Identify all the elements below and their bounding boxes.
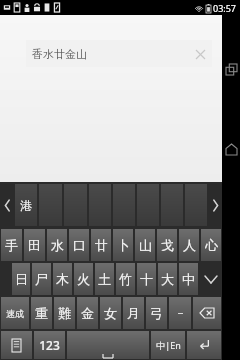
staticText: 中 [182, 271, 195, 287]
staticText: 水 [51, 237, 64, 253]
button[interactable]: 大 [158, 263, 177, 295]
button[interactable] [89, 184, 111, 226]
button[interactable]: 田 [24, 229, 45, 261]
staticText: 山 [139, 237, 152, 253]
staticText: 大 [161, 271, 174, 287]
staticText: 03:57 [213, 2, 237, 14]
button[interactable]: 弓 [146, 297, 167, 329]
button[interactable]: 心 [201, 229, 221, 261]
button[interactable]: 廿 [91, 229, 111, 261]
staticText: 金 [81, 305, 94, 321]
button[interactable]: 重 [31, 297, 52, 329]
button[interactable]: 土 [95, 263, 114, 295]
button[interactable]: Recent apps [222, 60, 240, 78]
button[interactable]: 尸 [32, 263, 51, 295]
button[interactable]: More candidates [208, 184, 222, 226]
button[interactable]: 水 [47, 229, 67, 261]
staticText: 卜 [117, 237, 130, 253]
button[interactable]: Input method settings [1, 331, 32, 359]
button[interactable]: 月 [123, 297, 144, 329]
button[interactable]: Space [67, 331, 149, 359]
staticText: 廿 [95, 237, 108, 253]
button[interactable]: 口 [69, 229, 89, 261]
staticText: 木 [56, 271, 69, 287]
staticText: 十 [140, 271, 153, 287]
button[interactable]: Home [222, 140, 240, 158]
button[interactable] [161, 184, 183, 226]
button[interactable]: 港 [15, 184, 37, 226]
button[interactable]: Previous candidates [0, 184, 14, 226]
button[interactable]: 難 [54, 297, 75, 329]
button[interactable]: Backspace [193, 297, 221, 329]
staticText: 戈 [161, 237, 174, 253]
staticText: 心 [205, 237, 218, 253]
staticText: 速成 [6, 308, 24, 319]
button[interactable]: 中|En [151, 331, 185, 359]
staticText: 中|En [156, 339, 181, 351]
staticText: 日 [15, 271, 28, 287]
button[interactable]: 火 [74, 263, 93, 295]
button[interactable]: － [169, 297, 191, 329]
button[interactable] [185, 184, 207, 226]
staticText: 田 [28, 237, 41, 253]
button[interactable]: 人 [179, 229, 199, 261]
staticText: 口 [73, 237, 86, 253]
button[interactable]: 竹 [116, 263, 135, 295]
staticText: 女 [104, 305, 117, 321]
button[interactable]: 山 [135, 229, 155, 261]
button[interactable]: Hide keyboard [199, 262, 222, 296]
staticText: 弓 [150, 305, 163, 321]
button[interactable]: 123 [34, 331, 65, 359]
staticText: － [175, 306, 186, 320]
button[interactable] [113, 184, 135, 226]
button[interactable]: 金 [77, 297, 98, 329]
staticText: 月 [127, 305, 140, 321]
staticText: 火 [77, 271, 90, 287]
staticText: 香水廿金山 [32, 47, 87, 61]
button[interactable]: 日 [12, 263, 30, 295]
staticText: 人 [183, 237, 196, 253]
staticText: 港 [20, 198, 32, 213]
button[interactable]: 中 [179, 263, 198, 295]
button[interactable] [39, 184, 62, 226]
button[interactable]: 速成 [1, 297, 29, 329]
button[interactable]: 女 [100, 297, 121, 329]
staticText: 手 [5, 237, 18, 253]
button[interactable]: 卜 [113, 229, 133, 261]
button[interactable]: 香水廿金山 [26, 40, 212, 67]
staticText: 難 [58, 305, 71, 321]
button[interactable]: 戈 [157, 229, 177, 261]
button[interactable]: Enter [187, 331, 221, 359]
button[interactable]: Clear text [190, 44, 210, 64]
staticText: 重 [35, 305, 48, 321]
button[interactable] [137, 184, 159, 226]
button[interactable] [64, 184, 87, 226]
button[interactable]: 手 [1, 229, 22, 261]
button[interactable]: 十 [137, 263, 156, 295]
staticText: 尸 [35, 271, 48, 287]
staticText: 土 [98, 271, 111, 287]
button[interactable]: 木 [53, 263, 72, 295]
staticText: 123 [39, 337, 60, 353]
staticText: 竹 [119, 271, 132, 287]
